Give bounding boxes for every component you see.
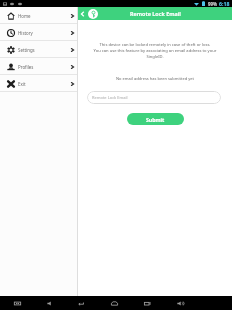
staticText: Settings: [18, 47, 35, 53]
staticText: History: [18, 30, 33, 36]
button[interactable]: Back: [78, 10, 86, 18]
button[interactable]: screenshot: [11, 297, 23, 309]
button[interactable]: History: [0, 24, 77, 41]
button[interactable]: back: [75, 297, 87, 309]
staticText: No email address has been submitted yet: [78, 76, 232, 81]
button[interactable]: Submit: [127, 113, 184, 125]
staticText: Remote Lock Email: [130, 10, 181, 17]
button[interactable]: Home: [0, 7, 77, 24]
button[interactable]: Exit: [0, 75, 77, 92]
staticText: Exit: [18, 81, 26, 87]
staticText: This device can be locked remotely in ca…: [78, 42, 232, 60]
staticText: Remote Lock Email: [92, 95, 128, 100]
button[interactable]: home: [108, 297, 120, 309]
staticText: Home: [18, 13, 31, 19]
button[interactable]: voldown: [43, 297, 55, 309]
button[interactable]: App icon: [88, 9, 98, 19]
staticText: 99%: [208, 1, 217, 7]
button[interactable]: Settings: [0, 41, 77, 58]
staticText: Submit: [146, 116, 165, 123]
button[interactable]: recents: [141, 297, 153, 309]
button[interactable]: Profiles: [0, 58, 77, 75]
staticText: 6:18: [219, 0, 230, 7]
button[interactable]: volup: [174, 297, 186, 309]
staticText: Profiles: [18, 64, 34, 70]
button[interactable]: Remote Lock Email: [87, 91, 221, 104]
